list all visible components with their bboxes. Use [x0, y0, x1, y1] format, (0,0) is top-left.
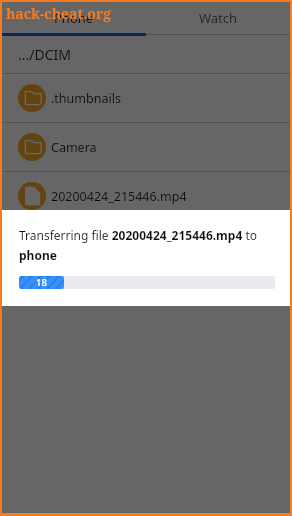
staticText: .thumbnails [51, 90, 121, 107]
staticText: Phone [54, 9, 94, 27]
staticText: Transferring file 20200424_215446.mp4 to… [19, 227, 275, 263]
staticText: .../DCIM [18, 45, 71, 64]
button[interactable]: Watch [146, 2, 290, 33]
staticText: Watch [199, 9, 238, 27]
button[interactable]: Camera [2, 123, 290, 171]
button[interactable]: 20200424_215446.mp4 [2, 172, 290, 220]
staticText: 18 [36, 276, 47, 289]
staticText: 20200424_215446.mp4 [51, 188, 187, 205]
staticText: Camera [51, 139, 97, 156]
button[interactable]: .thumbnails [2, 74, 290, 122]
staticText: hack-cheat.org [6, 4, 112, 23]
button[interactable]: Phone [2, 2, 146, 33]
